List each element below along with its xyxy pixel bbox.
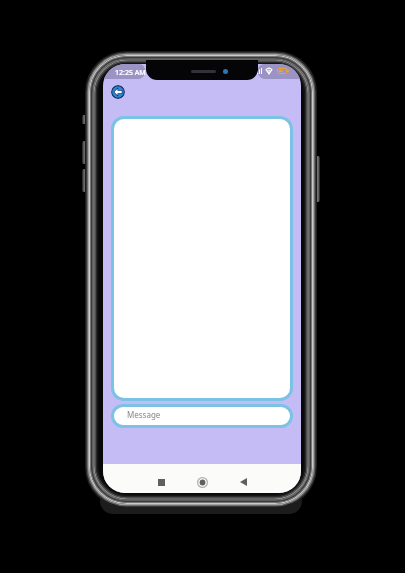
button[interactable]: Back [111,85,125,99]
button[interactable]: Home [192,472,212,492]
button[interactable]: Recents [151,472,171,492]
staticText: Message [127,409,161,420]
button[interactable]: Back [233,472,253,492]
button[interactable]: Message [114,407,290,425]
staticText: 12:25 AM [115,68,146,78]
